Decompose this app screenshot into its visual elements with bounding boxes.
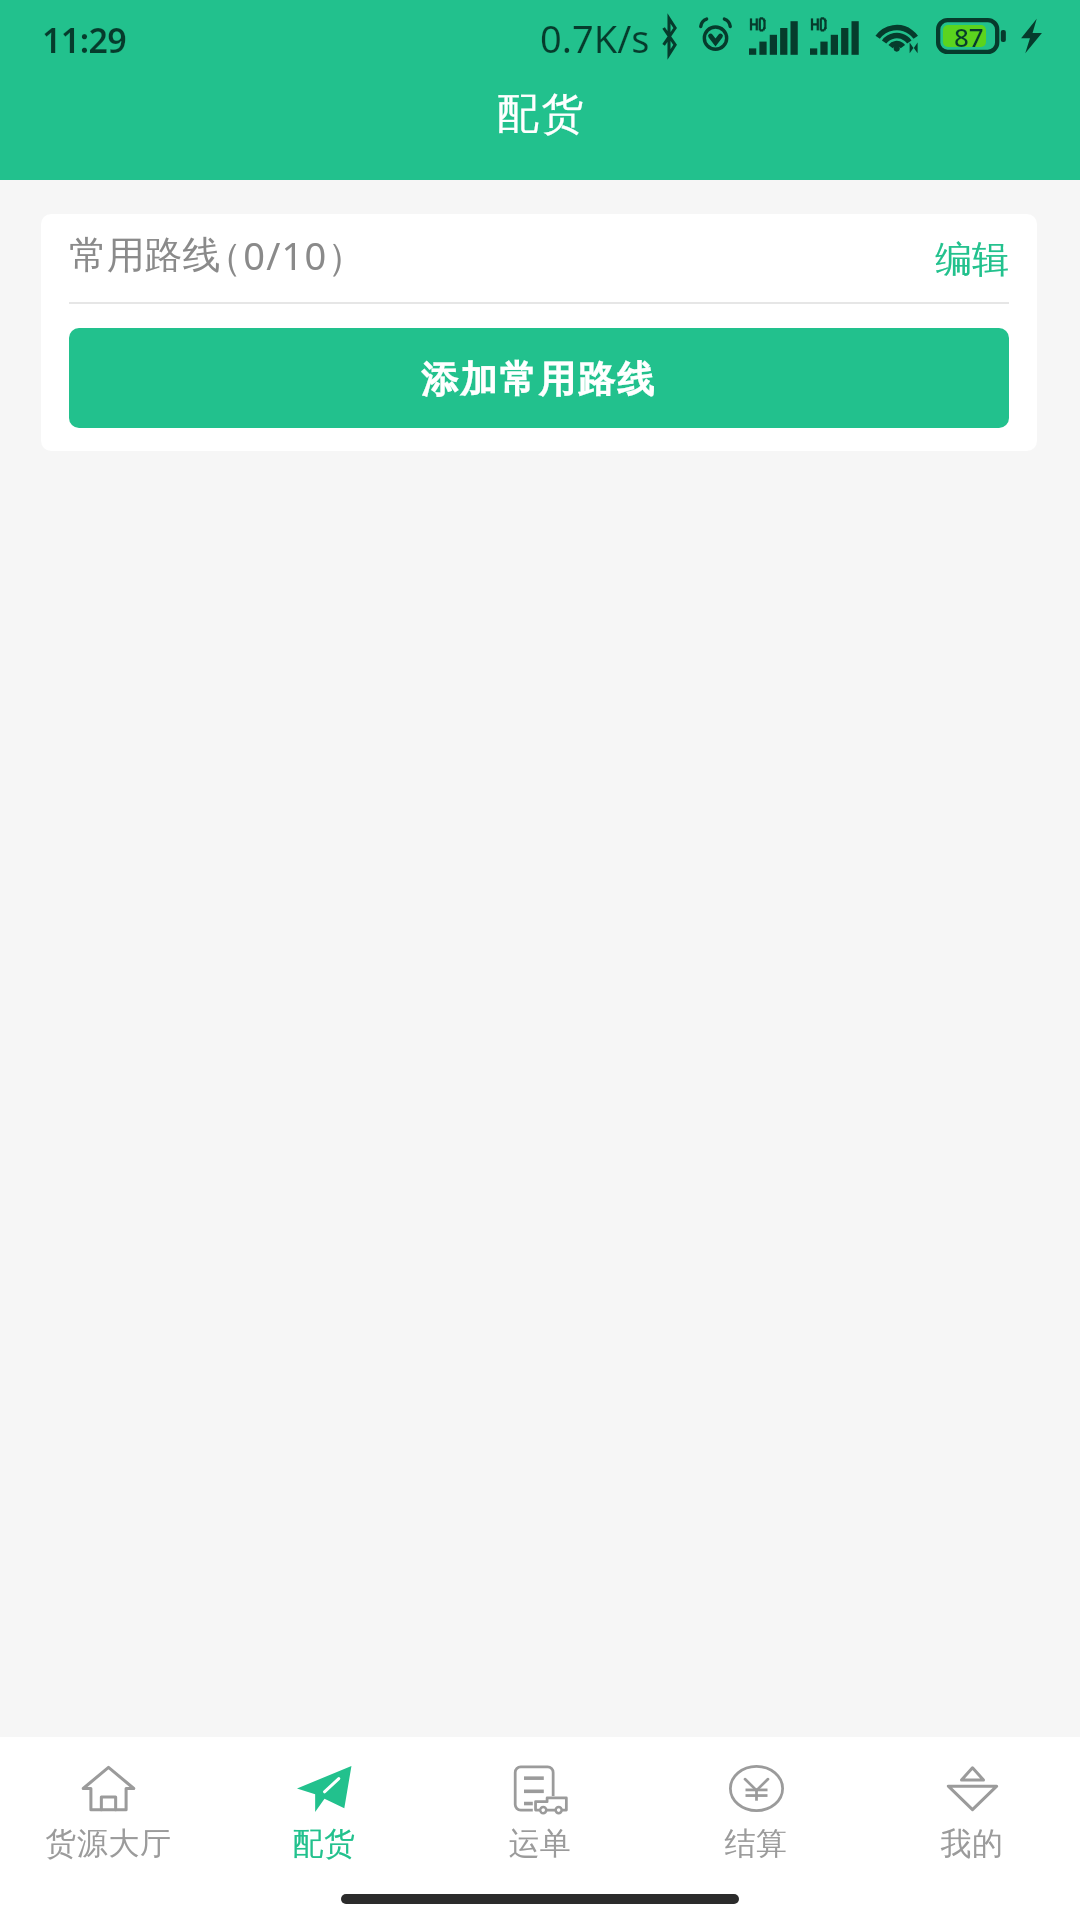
button[interactable]: 货源大厅 — [0, 1737, 216, 1877]
staticText: 货源大厅 — [45, 1824, 172, 1863]
staticText: 常用路线 — [69, 231, 221, 279]
staticText: 结算 — [724, 1824, 788, 1863]
button[interactable]: 编辑 — [929, 225, 1015, 292]
button[interactable]: 配货 — [216, 1737, 432, 1877]
button[interactable]: 结算 — [648, 1737, 864, 1877]
staticText: 87 — [954, 19, 984, 54]
staticText: 运单 — [508, 1824, 572, 1863]
staticText: 配货 — [292, 1824, 356, 1863]
button[interactable]: 我的 — [864, 1737, 1080, 1877]
staticText: （0/10） — [204, 229, 367, 281]
button[interactable]: 添加常用路线 — [69, 328, 1009, 428]
staticText: 配货 — [495, 88, 585, 141]
staticText: 我的 — [940, 1824, 1004, 1863]
staticText: 编辑 — [935, 236, 1009, 283]
staticText: 11:29 — [42, 17, 127, 63]
button[interactable]: 运单 — [432, 1737, 648, 1877]
staticText: 添加常用路线 — [421, 356, 657, 403]
staticText: 0.7K/s — [540, 12, 650, 64]
